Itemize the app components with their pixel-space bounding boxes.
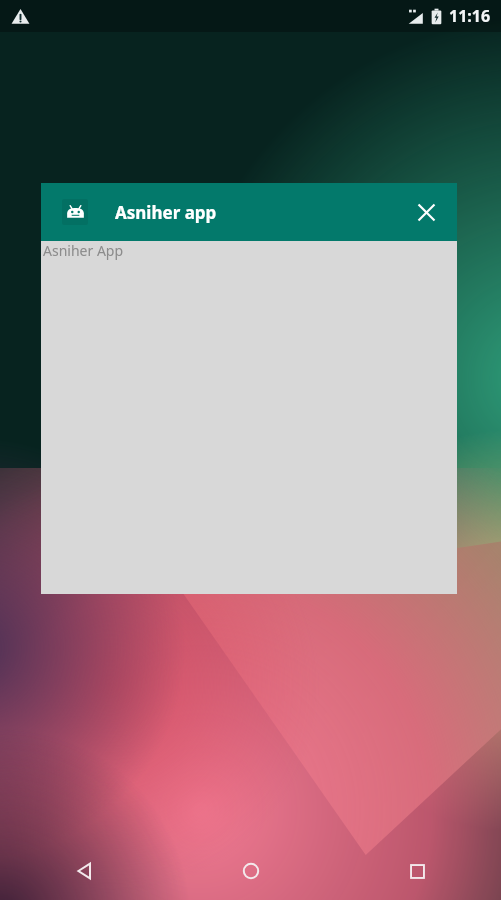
staticText: Asniher app [115,201,217,224]
staticText: Asniher App [43,241,124,260]
button[interactable]: Home [167,842,334,900]
button[interactable]: Recent apps [334,842,501,900]
button[interactable]: Back [0,842,167,900]
staticText: 11:16 [449,5,491,27]
button[interactable]: Close [403,189,449,235]
